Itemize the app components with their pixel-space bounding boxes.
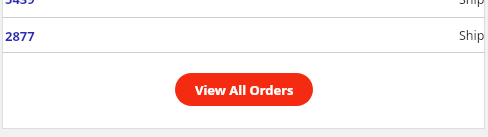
staticText: 5439 (5, 0, 35, 8)
staticText: Ship (459, 27, 485, 44)
button[interactable]: 2877 (2, 18, 485, 53)
button[interactable]: 5439 (2, 0, 485, 18)
button[interactable]: View All Orders (175, 73, 313, 106)
staticText: 2877 (5, 27, 35, 45)
staticText: View All Orders (195, 81, 294, 99)
staticText: Ship (459, 0, 485, 8)
